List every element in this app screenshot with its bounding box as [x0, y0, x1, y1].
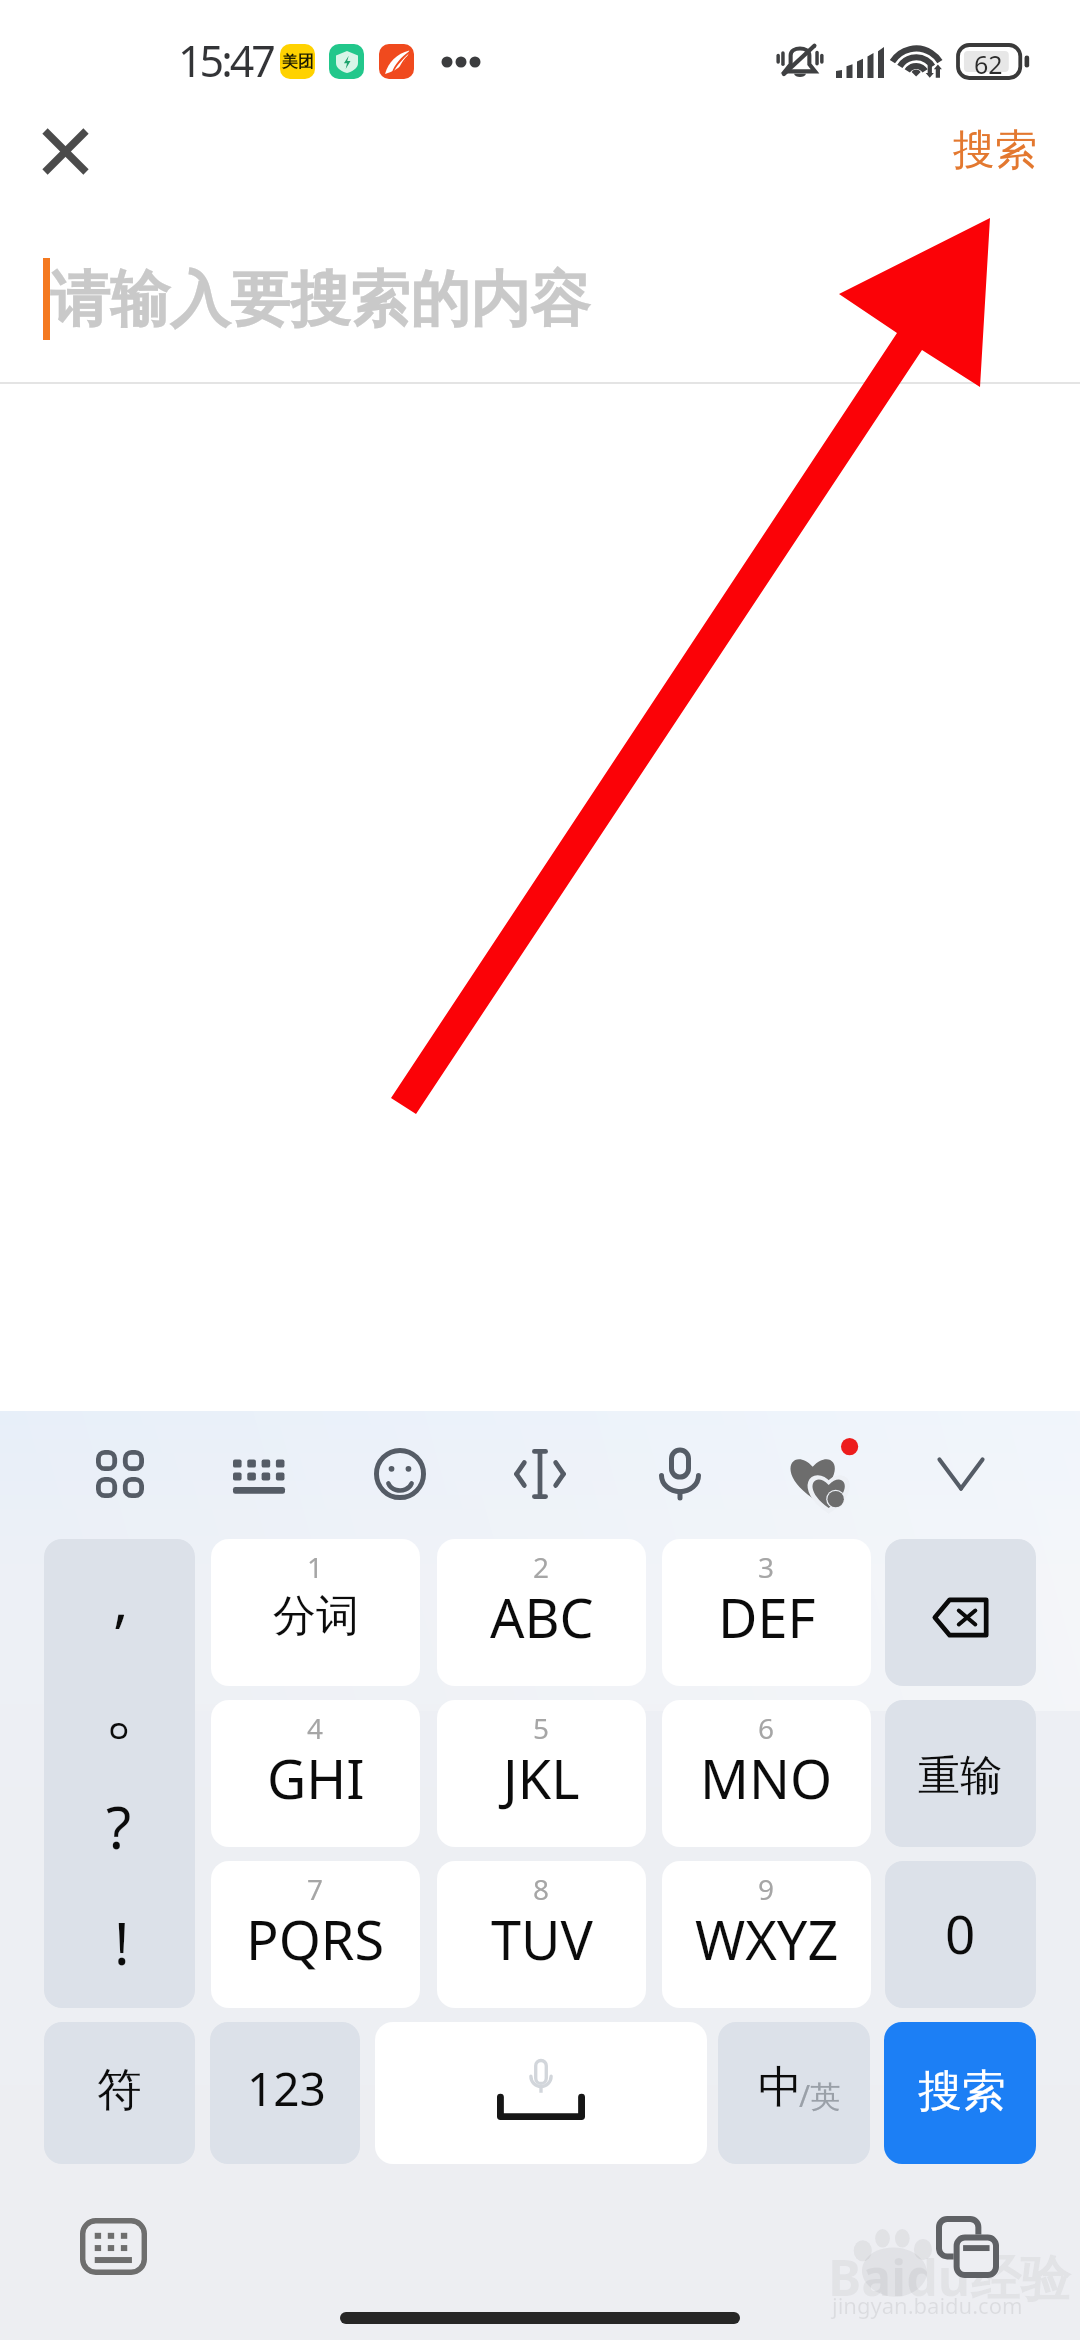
staticText: 请输入要搜索的内容	[50, 262, 590, 338]
staticText: Baidu经验	[828, 2243, 1071, 2311]
staticText: 重输	[918, 1750, 1002, 1803]
staticText: MNO	[700, 1741, 833, 1815]
button[interactable]: Keyboard layout	[233, 1450, 285, 1498]
staticText: /英	[799, 2075, 841, 2116]
staticText: 搜索	[953, 124, 1037, 177]
button[interactable]: Space	[375, 2022, 707, 2164]
button[interactable]: Switch keyboard	[80, 2218, 147, 2275]
staticText: ?	[106, 1787, 132, 1866]
button[interactable]: Emoji	[374, 1448, 426, 1500]
staticText: ABC	[490, 1580, 594, 1654]
staticText: 62	[974, 47, 1003, 80]
staticText: 0	[945, 1897, 976, 1969]
staticText: 符	[97, 2062, 142, 2119]
staticText: !	[114, 1903, 130, 1982]
staticText: WXYZ	[695, 1902, 839, 1976]
staticText: DEF	[718, 1580, 816, 1654]
button[interactable]: 重输	[885, 1700, 1036, 1847]
staticText: 。	[103, 1658, 179, 1754]
staticText: 8	[533, 1870, 550, 1908]
button[interactable]: 中	[718, 2022, 870, 2164]
button[interactable]: 搜索	[884, 2022, 1036, 2164]
button[interactable]: Backspace	[885, 1539, 1036, 1686]
button[interactable]: 2	[437, 1539, 646, 1686]
button[interactable]: Sticker ad	[784, 1437, 866, 1511]
button[interactable]: 123	[210, 2022, 360, 2164]
button[interactable]: Apps	[96, 1450, 144, 1498]
staticText: 7	[307, 1870, 324, 1908]
staticText: 3	[758, 1548, 775, 1586]
staticText: ,	[113, 1559, 129, 1638]
button[interactable]: 8	[437, 1861, 646, 2008]
button[interactable]: 1	[211, 1539, 420, 1686]
staticText: 美团	[282, 52, 314, 72]
staticText: 中	[758, 2060, 802, 2115]
button[interactable]: 4	[211, 1700, 420, 1847]
button[interactable]: Voice input	[655, 1448, 705, 1500]
button[interactable]: Move cursor	[512, 1448, 568, 1500]
button[interactable]: 9	[662, 1861, 871, 2008]
button[interactable]: 符	[44, 2022, 195, 2164]
staticText: 1	[307, 1548, 324, 1586]
staticText: 4	[307, 1709, 324, 1747]
button[interactable]: Hide keyboard	[937, 1457, 985, 1491]
staticText: 2	[533, 1548, 550, 1586]
staticText: TUV	[491, 1902, 593, 1976]
staticText: 6	[758, 1709, 775, 1747]
staticText: 搜索	[918, 2064, 1006, 2119]
button[interactable]: 5	[437, 1700, 646, 1847]
button[interactable]: 搜索	[932, 102, 1057, 198]
button[interactable]: 0	[885, 1861, 1036, 2008]
staticText: JKL	[503, 1741, 580, 1815]
staticText: jingyan.baidu.com	[832, 2290, 1023, 2320]
staticText: GHI	[267, 1741, 365, 1815]
button[interactable]: 3	[662, 1539, 871, 1686]
button[interactable]: Close	[22, 108, 108, 194]
staticText: 分词	[273, 1589, 359, 1643]
button[interactable]: 6	[662, 1700, 871, 1847]
staticText: PQRS	[246, 1902, 385, 1976]
staticText: 15:47	[178, 31, 273, 90]
staticText: 5	[533, 1709, 550, 1747]
staticText: 123	[247, 2057, 326, 2120]
button[interactable]: Punctuation	[44, 1539, 195, 2008]
staticText: 9	[758, 1870, 775, 1908]
button[interactable]: 7	[211, 1861, 420, 2008]
